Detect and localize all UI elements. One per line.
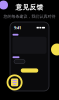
staticText: 9:41 xyxy=(14,25,21,30)
staticText: 意见反馈 xyxy=(15,3,43,11)
staticText: 您的每条建议，我们认真对待 xyxy=(3,14,55,19)
button[interactable] xyxy=(14,60,25,63)
button[interactable] xyxy=(21,68,38,73)
